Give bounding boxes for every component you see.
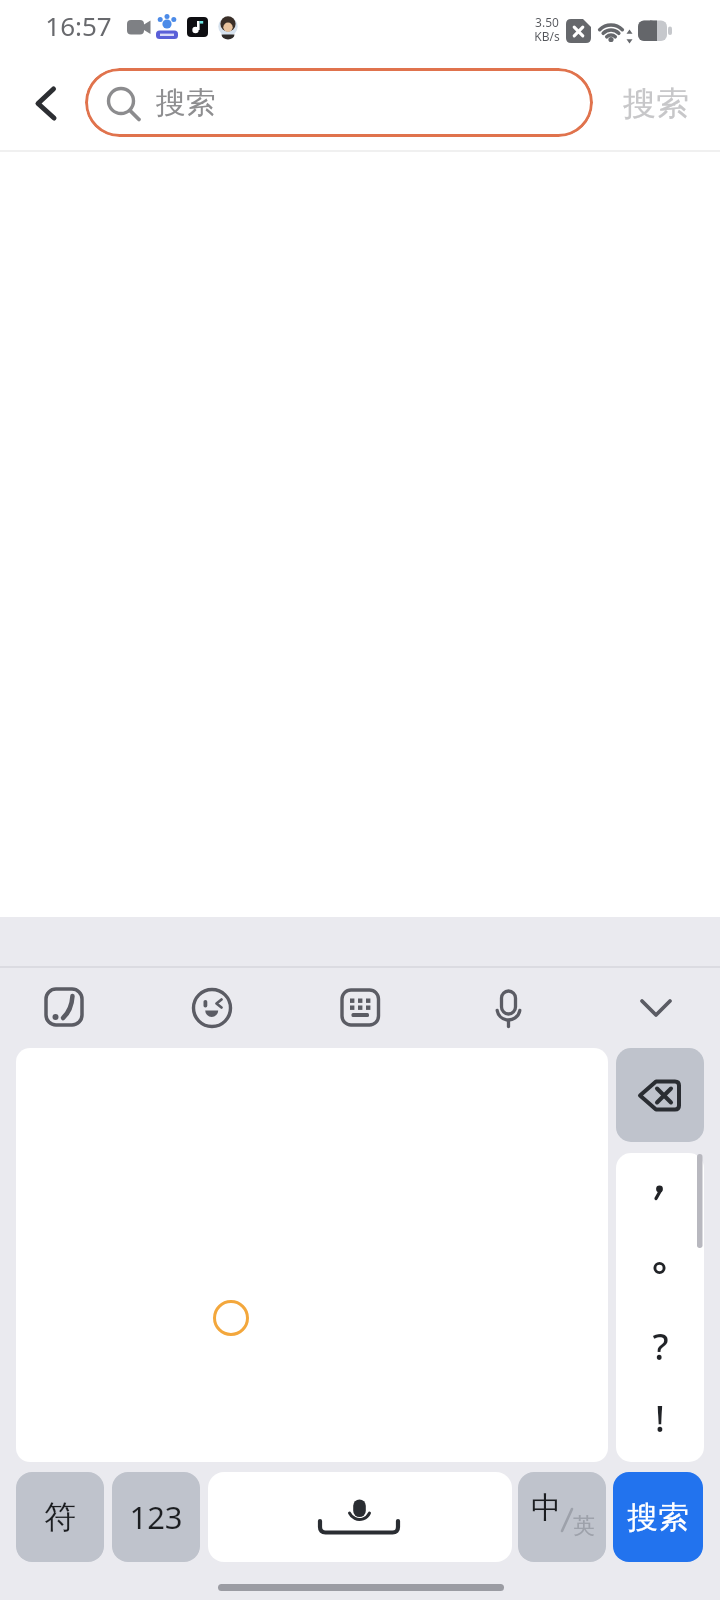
staticText: !: [655, 1394, 665, 1443]
staticText: 16:57: [45, 8, 112, 40]
button[interactable]: [616, 1153, 704, 1230]
button[interactable]: ?: [616, 1307, 704, 1385]
button[interactable]: [616, 1048, 704, 1142]
button[interactable]: !: [616, 1380, 704, 1457]
button[interactable]: 符: [16, 1472, 104, 1562]
button[interactable]: [16, 1048, 608, 1462]
button[interactable]: 搜索: [85, 68, 593, 137]
button[interactable]: 搜索: [613, 1472, 703, 1562]
button[interactable]: [36, 980, 92, 1036]
button[interactable]: [480, 980, 536, 1036]
staticText: 123: [129, 1496, 183, 1538]
staticText: 符: [44, 1497, 76, 1537]
staticText: 3.50 KB/s: [534, 14, 560, 45]
staticText: 搜索: [156, 84, 216, 122]
button[interactable]: [208, 1472, 512, 1562]
staticText: 英: [573, 1512, 595, 1540]
button[interactable]: [518, 1472, 606, 1562]
button[interactable]: [24, 76, 80, 132]
button[interactable]: 123: [112, 1472, 200, 1562]
button[interactable]: [628, 980, 684, 1036]
button[interactable]: 搜索: [606, 76, 706, 132]
button[interactable]: [332, 980, 388, 1036]
staticText: ?: [652, 1322, 669, 1371]
staticText: 搜索: [623, 83, 689, 125]
staticText: 中: [531, 1489, 561, 1525]
staticText: 搜索: [627, 1498, 689, 1537]
button[interactable]: [616, 1230, 704, 1307]
button[interactable]: [184, 980, 240, 1036]
